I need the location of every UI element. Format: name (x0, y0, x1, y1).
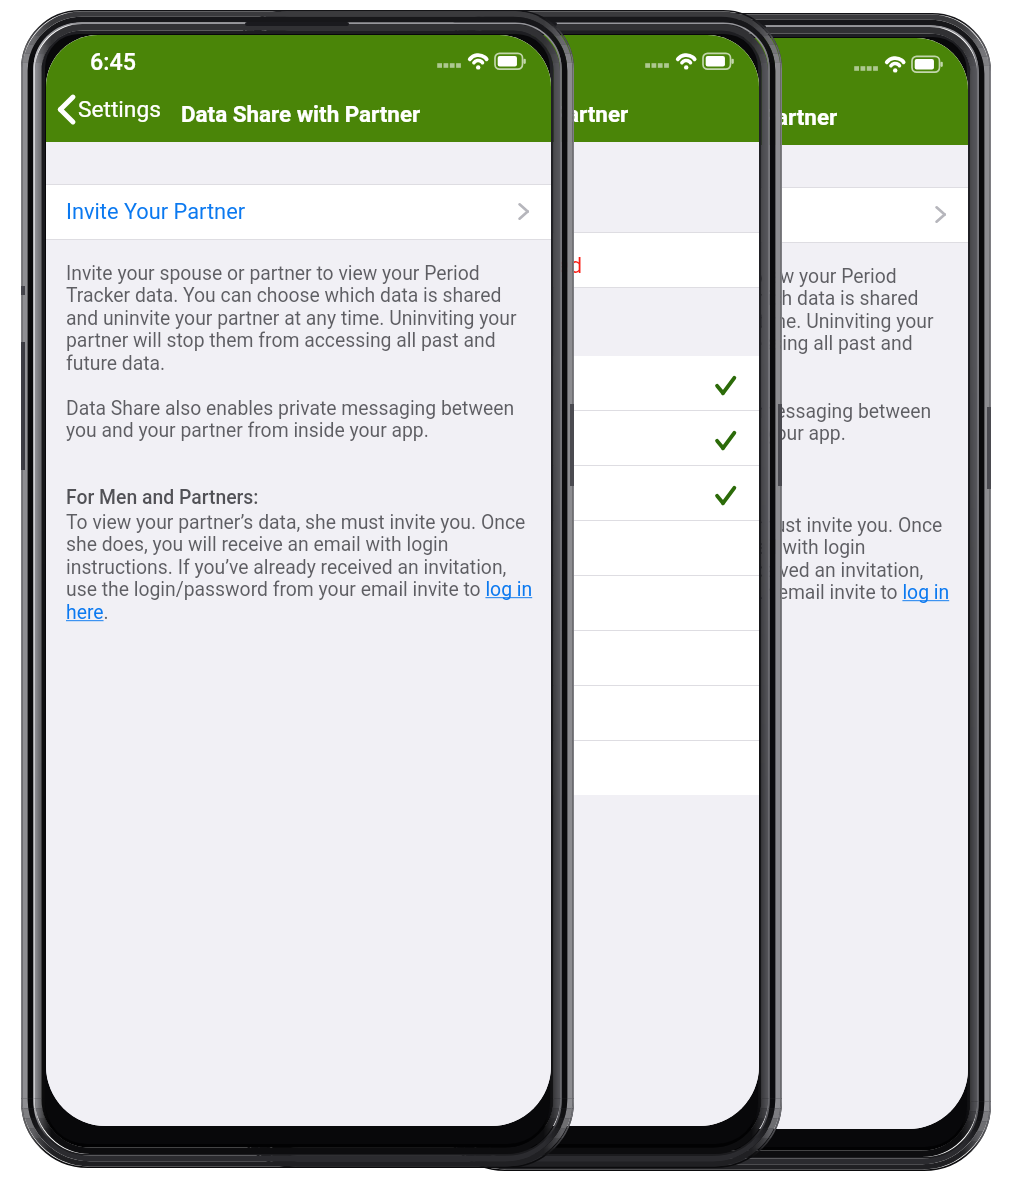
staticText: For Men and Partners: (66, 486, 259, 509)
button[interactable]: Weight (254, 631, 759, 685)
staticText: instructions. If you’ve already received… (66, 556, 507, 579)
staticText: Settings (495, 99, 578, 126)
staticText: Data Share with Partner (389, 101, 629, 127)
staticText: Tracker data. You can choose which data … (66, 284, 502, 307)
staticText: she does, you will receive an email with… (483, 536, 866, 559)
staticText: use the login/password from your email i… (483, 581, 950, 604)
button[interactable]: Invite Your Partner (46, 185, 551, 240)
staticText: Settings (286, 96, 369, 123)
staticText: Symptoms (274, 425, 379, 451)
staticText: To view your partner’s data, she must in… (66, 511, 526, 534)
staticText: Invite Your Partner (483, 202, 663, 228)
button[interactable]: Temperature (254, 686, 759, 740)
staticText: For Men and Partners: (483, 489, 676, 512)
staticText: Data Share is currently disabled (274, 253, 583, 279)
staticText: Intimacy (274, 590, 358, 616)
button[interactable]: Invite Your Partner (463, 188, 968, 243)
staticText: Invite your spouse or partner to view yo… (483, 265, 897, 288)
staticText: partner will stop them from accessing al… (483, 332, 913, 355)
staticText: Data Share with Partner (181, 101, 421, 127)
button[interactable]: Period Dates (254, 356, 759, 410)
button[interactable]: Settings (469, 89, 586, 135)
button[interactable]: Pills (254, 741, 759, 795)
button[interactable]: Intimacy (254, 576, 759, 630)
staticText: Invite your spouse or partner to view yo… (66, 262, 480, 285)
staticText: here. (66, 601, 109, 624)
staticText: future data. (483, 355, 583, 378)
staticText: Settings (78, 96, 161, 123)
staticText: To view your partner’s data, she must in… (483, 514, 943, 537)
staticText: 6:45 (90, 48, 136, 75)
button[interactable]: Symptoms (254, 411, 759, 465)
button[interactable]: Notes (254, 521, 759, 575)
staticText: Tracker data. You can choose which data … (483, 287, 919, 310)
staticText: Data Share also enables private messagin… (483, 400, 932, 423)
button[interactable]: Settings (52, 86, 169, 132)
staticText: you and your partner from inside your ap… (66, 419, 429, 442)
staticText: she does, you will receive an email with… (66, 533, 449, 556)
staticText: Notes (274, 535, 332, 561)
button[interactable]: Data Share is currently disabled (254, 233, 759, 287)
staticText: Data Share with Partner (598, 104, 838, 130)
staticText: future data. (66, 352, 166, 375)
staticText: Data Share also enables private messagin… (66, 397, 515, 420)
button[interactable]: Moods (254, 466, 759, 520)
staticText: and uninvite your partner at any time. U… (66, 307, 517, 330)
staticText: 6:45 (507, 51, 553, 78)
staticText: instructions. If you’ve already received… (483, 559, 924, 582)
staticText: and uninvite your partner at any time. U… (483, 310, 934, 333)
staticText: partner will stop them from accessing al… (66, 329, 496, 352)
staticText: you and your partner from inside your ap… (483, 422, 846, 445)
staticText: Invite Your Partner (66, 199, 246, 225)
staticText: use the login/password from your email i… (66, 578, 533, 601)
button[interactable]: Settings (260, 86, 377, 132)
